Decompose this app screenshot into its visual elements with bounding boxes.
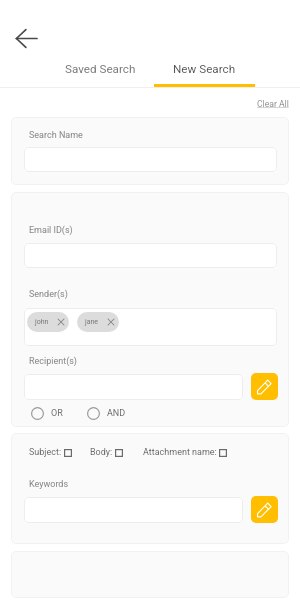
staticText: Sender(s) <box>29 289 68 300</box>
button[interactable]: Clear All <box>257 99 289 109</box>
button[interactable]: OR <box>31 407 63 420</box>
staticText: Email ID(s) <box>29 225 73 236</box>
button[interactable]: Subject: <box>29 447 72 458</box>
staticText: Body: <box>90 447 113 458</box>
button[interactable] <box>24 243 277 268</box>
staticText: Keywords <box>29 479 69 490</box>
staticText: AND <box>107 408 126 419</box>
button[interactable]: jane <box>77 312 119 332</box>
staticText: Clear All <box>257 99 289 109</box>
button[interactable]: AND <box>87 407 126 420</box>
staticText: Saved Search <box>65 62 136 76</box>
button[interactable]: Body: <box>90 447 123 458</box>
button[interactable] <box>24 374 243 400</box>
button[interactable]: Saved Search <box>47 56 153 82</box>
button[interactable] <box>24 497 243 523</box>
button[interactable]: Edit <box>251 373 278 400</box>
staticText: jane <box>85 318 99 326</box>
staticText: Search Name <box>29 130 83 141</box>
button[interactable]: Edit <box>251 496 278 523</box>
staticText: OR <box>51 408 63 419</box>
staticText: New Search <box>173 62 236 76</box>
button[interactable]: Back <box>12 24 41 53</box>
staticText: Recipient(s) <box>29 356 78 367</box>
button[interactable]: New Search <box>151 56 257 82</box>
staticText: john <box>35 318 49 326</box>
button[interactable]: Attachment name: <box>143 447 227 458</box>
staticText: Attachment name: <box>143 447 217 458</box>
staticText: Subject: <box>29 447 62 458</box>
button[interactable]: john <box>27 312 69 332</box>
button[interactable] <box>24 147 277 172</box>
button[interactable]: john <box>24 308 277 346</box>
